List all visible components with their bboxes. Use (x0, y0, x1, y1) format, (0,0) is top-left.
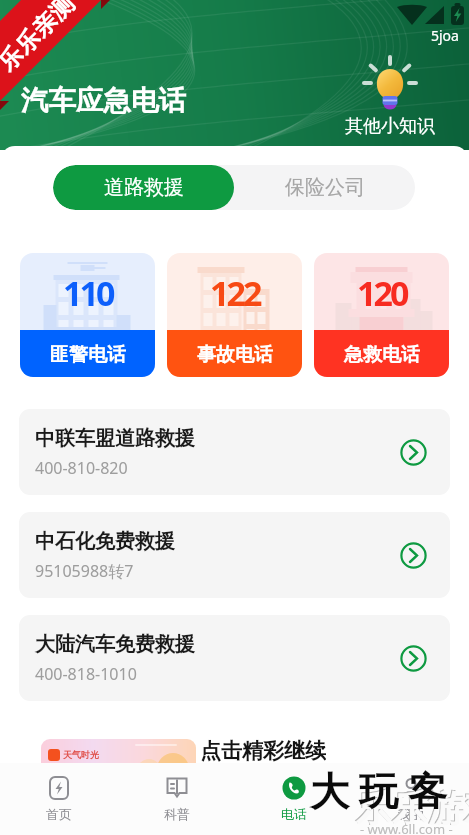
staticText: 5joa (431, 26, 459, 45)
staticText: 乐乐游戏 (356, 786, 469, 831)
staticText: 400-818-1010 (35, 663, 137, 685)
staticText: 道路救援 (104, 175, 184, 200)
staticText: 乐乐亲测 (0, 0, 81, 78)
staticText: 科普 (164, 806, 190, 822)
staticText: 大陆汽车免费救援 (35, 632, 195, 657)
button[interactable]: 122 (167, 253, 302, 377)
button[interactable]: 电话 (235, 763, 352, 835)
staticText: 我的 (398, 806, 424, 822)
staticText: 大玩客 (305, 767, 452, 816)
staticText: 中联车盟道路救援 (35, 426, 195, 451)
button[interactable]: 道路救援 (53, 165, 234, 210)
staticText: 120 (357, 270, 407, 316)
button[interactable]: 120 (314, 253, 449, 377)
staticText: 乐乐游戏 (355, 785, 469, 830)
staticText: 首页 (46, 806, 72, 822)
staticText: 122 (210, 270, 260, 316)
staticText: 天气时光 (63, 749, 99, 760)
staticText: 汽车应急电话 (21, 84, 186, 119)
button[interactable]: 中石化免费救援 (19, 512, 450, 598)
staticText: 95105988转7 (35, 560, 134, 582)
button[interactable]: 中联车盟道路救援 (19, 409, 450, 495)
staticText: 事故电话 (197, 343, 273, 367)
staticText: 中石化免费救援 (35, 529, 175, 554)
staticText: 急救电话 (344, 343, 420, 367)
button[interactable]: 大陆汽车免费救援 (19, 615, 450, 701)
staticText: 电话 (281, 806, 307, 822)
staticText: 保险公司 (285, 175, 365, 200)
button[interactable]: 天气时光 (41, 739, 196, 763)
button[interactable]: 110 (20, 253, 155, 377)
staticText: 其他小知识 (345, 115, 435, 138)
staticText: 匪警电话 (50, 343, 126, 367)
button[interactable]: 科普 (118, 763, 235, 835)
button[interactable]: 其他小知识 (340, 55, 440, 138)
staticText: 110 (63, 270, 113, 316)
button[interactable]: 首页 (0, 763, 118, 835)
button[interactable]: 我的 (352, 763, 469, 835)
staticText: 400-810-820 (35, 457, 128, 479)
staticText: - www.6ll.com - (360, 820, 453, 835)
button[interactable]: 保险公司 (234, 165, 415, 210)
staticText: 点击精彩继续 (200, 738, 326, 763)
